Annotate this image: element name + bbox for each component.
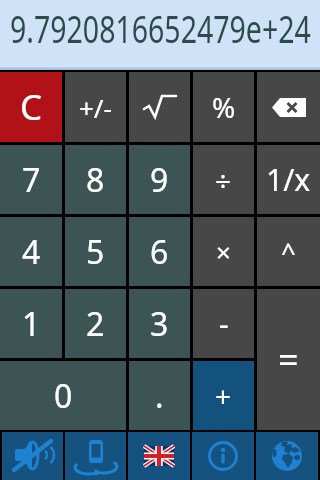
button[interactable]: 1 (0, 289, 62, 358)
staticText: +/- (79, 90, 112, 125)
button[interactable]: 8 (65, 145, 126, 214)
button[interactable]: 6 (129, 217, 190, 286)
button[interactable]: . (129, 361, 190, 430)
button[interactable] (128, 432, 190, 480)
staticText: 8 (86, 158, 105, 202)
button[interactable]: ÷ (193, 145, 254, 214)
button[interactable]: 9 (129, 145, 190, 214)
staticText: 9 (150, 158, 169, 202)
button[interactable]: + (193, 361, 254, 430)
staticText: + (215, 377, 232, 415)
staticText: % (212, 88, 236, 126)
button[interactable]: 5 (65, 217, 126, 286)
button[interactable]: 0 (0, 361, 126, 430)
button[interactable]: 7 (0, 145, 62, 214)
button[interactable] (0, 0, 320, 70)
staticText: 0 (54, 374, 73, 418)
staticText: . (155, 374, 164, 418)
staticText: 5 (86, 230, 105, 274)
staticText: 7 (22, 158, 41, 202)
button[interactable] (2, 432, 63, 480)
staticText: 2 (86, 302, 105, 346)
button[interactable]: = (257, 289, 320, 430)
staticText: 3 (150, 302, 169, 346)
button[interactable] (257, 72, 320, 142)
staticText: = (278, 335, 299, 384)
staticText: C (20, 83, 43, 131)
staticText: 6 (150, 230, 169, 274)
button[interactable] (192, 432, 254, 480)
button[interactable]: +/- (65, 72, 126, 142)
staticText: ÷ (215, 161, 232, 199)
button[interactable] (65, 432, 126, 480)
button[interactable] (129, 72, 190, 142)
staticText: - (219, 303, 229, 344)
button[interactable]: 4 (0, 217, 62, 286)
button[interactable]: × (193, 217, 254, 286)
staticText: 1 (22, 302, 41, 346)
button[interactable]: 2 (65, 289, 126, 358)
button[interactable]: 3 (129, 289, 190, 358)
button[interactable]: ^ (257, 217, 320, 286)
button[interactable]: % (193, 72, 254, 142)
staticText: 4 (22, 230, 41, 274)
button[interactable]: - (193, 289, 254, 358)
button[interactable] (256, 432, 318, 480)
button[interactable]: C (0, 72, 62, 142)
button[interactable]: 1/x (257, 145, 320, 214)
staticText: 1/x (266, 159, 311, 200)
staticText: ^ (281, 234, 296, 269)
staticText: × (216, 234, 231, 269)
